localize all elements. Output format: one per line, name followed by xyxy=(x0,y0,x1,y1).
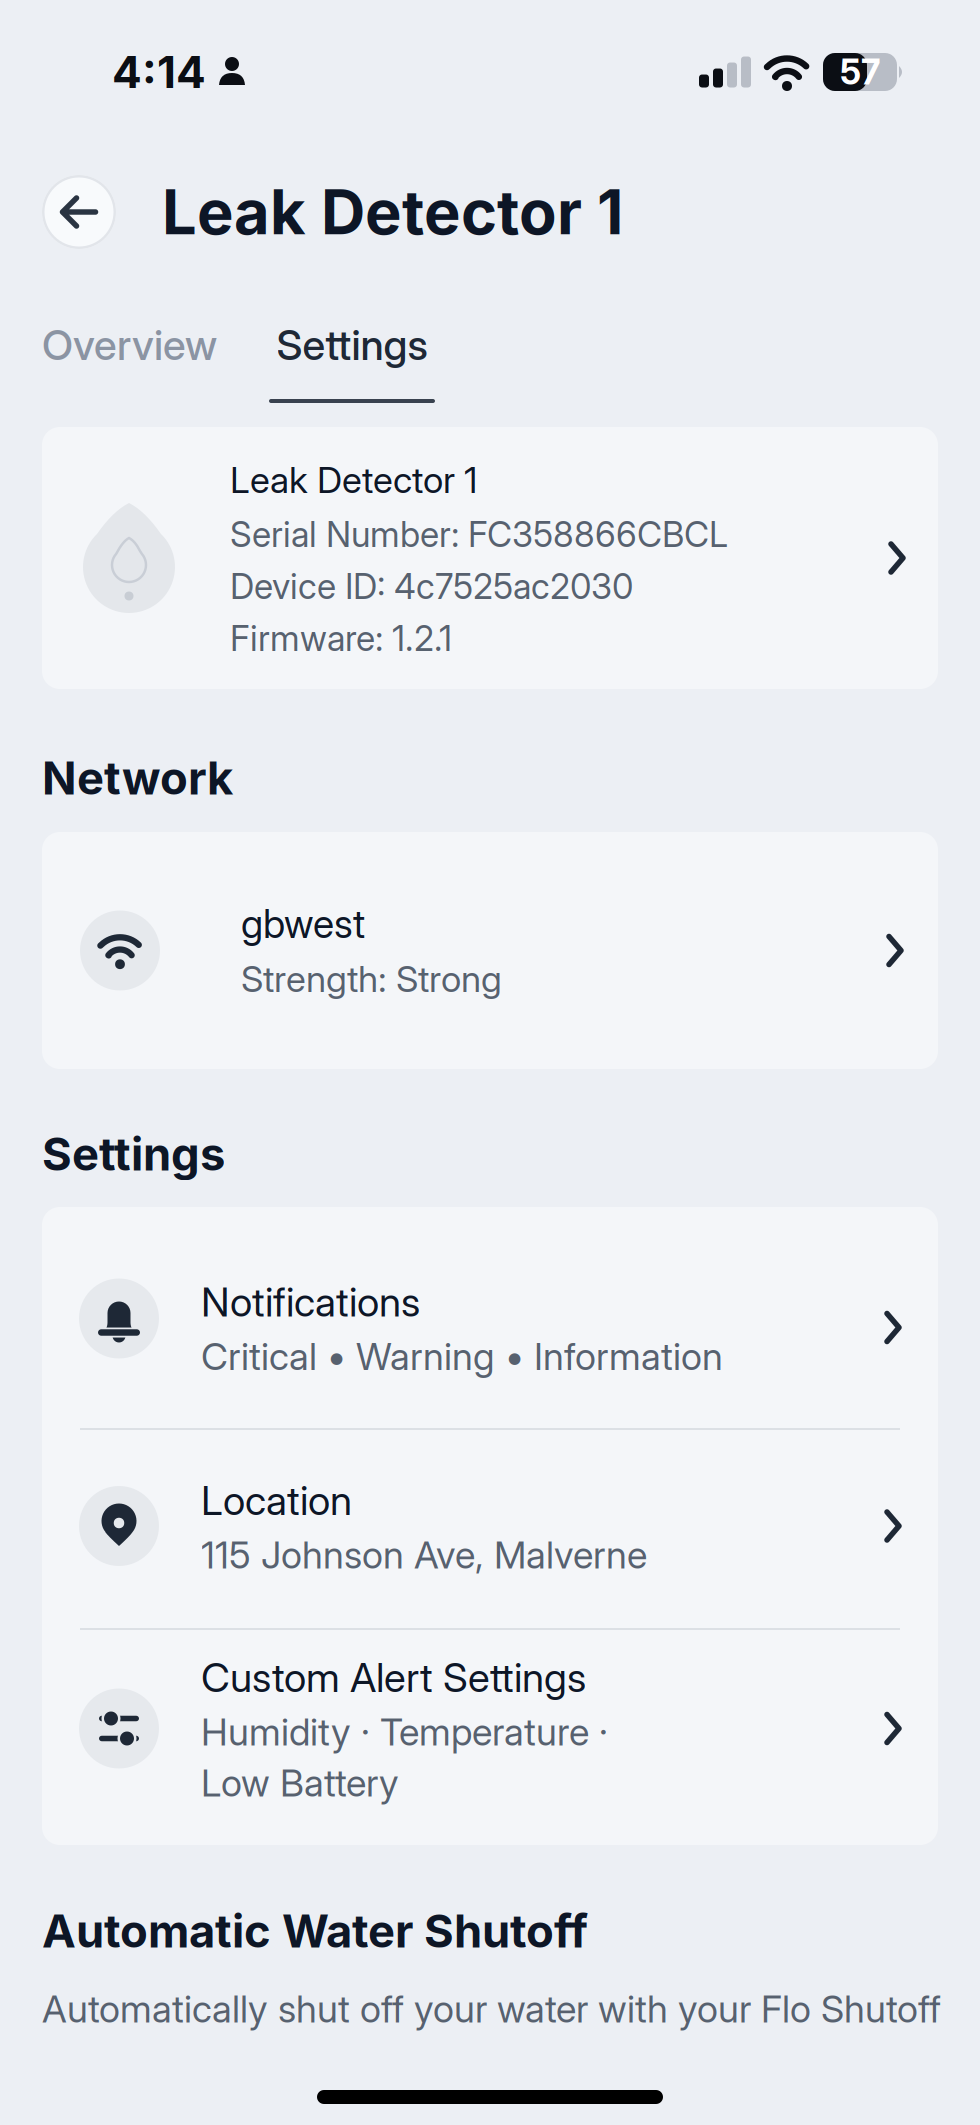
button[interactable]: gbwest xyxy=(42,832,938,1069)
staticText: Automatically shut off your water with y… xyxy=(42,1987,941,2031)
staticText: Humidity · Temperature · xyxy=(201,1710,608,1754)
staticText: Location xyxy=(201,1477,352,1524)
staticText: Leak Detector 1 xyxy=(162,176,623,248)
button[interactable]: Custom Alert Settings xyxy=(42,1630,938,1845)
button[interactable]: Location xyxy=(42,1430,938,1628)
staticText: Low Battery xyxy=(201,1761,399,1805)
staticText: Strength: Strong xyxy=(241,958,502,1000)
staticText: gbwest xyxy=(241,901,365,947)
staticText: Settings xyxy=(276,321,427,369)
staticText: Automatic Water Shutoff xyxy=(42,1904,588,1958)
button[interactable]: Overview xyxy=(42,317,217,373)
staticText: Critical • Warning • Information xyxy=(201,1334,723,1378)
button[interactable] xyxy=(42,175,116,249)
staticText: 4:14 xyxy=(112,46,206,98)
staticText: Custom Alert Settings xyxy=(201,1654,586,1701)
staticText: 115 Johnson Ave, Malverne xyxy=(201,1533,647,1577)
staticText: Notifications xyxy=(201,1278,420,1326)
button[interactable]: Notifications xyxy=(42,1207,938,1428)
staticText: 57 xyxy=(840,52,880,92)
staticText: Firmware: 1.2.1 xyxy=(230,618,452,659)
staticText: Device ID: 4c7525ac2030 xyxy=(230,566,633,607)
button[interactable]: Settings xyxy=(269,317,435,403)
staticText: Network xyxy=(42,751,233,805)
staticText: Settings xyxy=(42,1127,225,1181)
staticText: Overview xyxy=(42,321,217,369)
staticText: Leak Detector 1 xyxy=(230,459,477,501)
staticText: Serial Number: FC358866CBCL xyxy=(230,514,728,555)
button[interactable]: Leak Detector 1 xyxy=(42,427,938,689)
